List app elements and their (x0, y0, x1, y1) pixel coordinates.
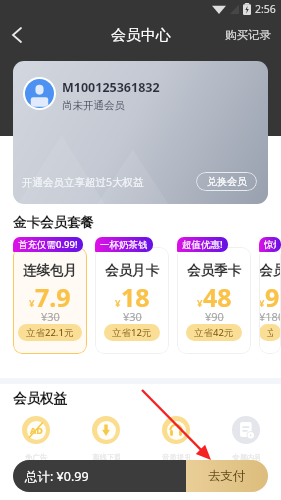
staticText: ¥ (259, 297, 265, 310)
staticText: 总计: ¥0.99 (25, 468, 89, 485)
staticText: 会员中心 (111, 26, 171, 45)
staticText: 金卡会员套餐 (13, 214, 94, 231)
staticText: 超值优惠! (182, 238, 223, 251)
staticText: 尚未开通会员 (62, 99, 125, 112)
staticText: 98 (265, 280, 281, 314)
button[interactable]: 专属内容 (232, 416, 260, 464)
staticText: ¥180 (259, 309, 281, 324)
staticText: 2:56 (255, 2, 276, 16)
button[interactable]: 去支付 (186, 460, 268, 492)
staticText: ¥ (197, 297, 203, 310)
staticText: 免广告 (25, 453, 48, 462)
staticText: 会员月卡 (105, 262, 159, 279)
staticText: 48 (203, 280, 232, 314)
staticText: 连续包月 (23, 262, 77, 279)
button[interactable]: M100125361832 (13, 61, 268, 204)
staticText: 开通会员立享超过5大权益 (22, 175, 144, 189)
staticText: 首充仅需0.99! (18, 238, 78, 251)
button[interactable]: Back (0, 18, 34, 52)
button[interactable]: 音质提升 (162, 416, 190, 464)
staticText: ¥30 (123, 309, 142, 324)
button[interactable]: 会员年卡 (259, 247, 281, 354)
staticText: 惊爆价! (264, 238, 276, 251)
staticText: 会员季卡 (187, 262, 241, 279)
button[interactable]: 免广告 (22, 416, 50, 464)
staticText: 立省22.1元 (26, 326, 74, 339)
button[interactable]: 会员季卡 (177, 247, 251, 354)
button[interactable]: 兑换会员 (196, 172, 257, 191)
staticText: 立省82元 (267, 326, 273, 339)
staticText: 立省42元 (194, 326, 234, 339)
staticText: 7.9 (35, 280, 71, 314)
staticText: 离线下载 (92, 453, 120, 462)
button[interactable]: 购买记录 (215, 18, 281, 52)
staticText: 立省12元 (112, 326, 152, 339)
staticText: 18 (121, 280, 150, 314)
staticText: 去支付 (208, 468, 246, 484)
staticText: ¥ (29, 297, 35, 310)
button[interactable]: 连续包月 (13, 247, 87, 354)
staticText: M100125361832 (62, 79, 160, 96)
staticText: AD (30, 424, 43, 436)
staticText: ¥30 (41, 309, 60, 324)
staticText: 兑换会员 (207, 175, 247, 188)
staticText: 购买记录 (225, 28, 271, 42)
staticText: 专属内容 (232, 453, 260, 462)
staticText: 会员权益 (13, 390, 67, 407)
button[interactable]: 离线下载 (92, 416, 120, 464)
button[interactable]: 会员月卡 (95, 247, 169, 354)
staticText: 音质提升 (162, 453, 190, 462)
staticText: ¥ (115, 297, 121, 310)
staticText: ¥90 (205, 309, 224, 324)
staticText: 一杯奶茶钱 (100, 239, 148, 251)
staticText: 会员年卡 (259, 262, 281, 279)
